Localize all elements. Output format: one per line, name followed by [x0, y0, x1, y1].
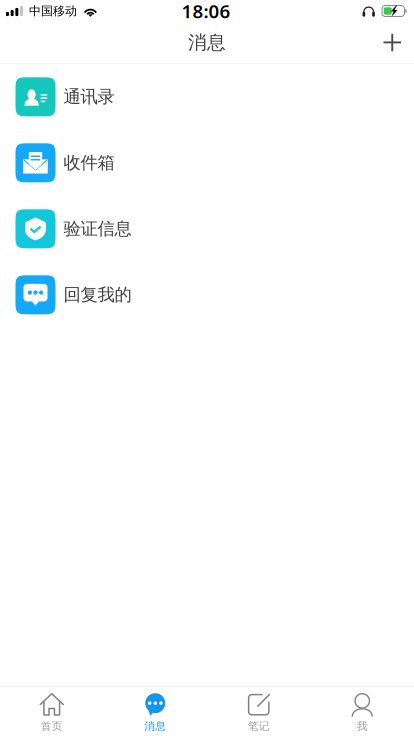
staticText: 中国移动	[29, 4, 77, 18]
button[interactable]: 验证信息	[0, 196, 414, 262]
staticText: 通讯录	[63, 86, 114, 107]
button[interactable]: 首页	[0, 685, 103, 736]
button[interactable]: 消息	[103, 685, 207, 736]
staticText: 我	[357, 720, 368, 733]
staticText: 消息	[188, 31, 226, 54]
button[interactable]: 通讯录	[0, 64, 414, 130]
button[interactable]: 笔记	[207, 685, 310, 736]
button[interactable]: 收件箱	[0, 130, 414, 196]
staticText: 笔记	[248, 720, 270, 733]
staticText: 收件箱	[63, 152, 114, 173]
staticText: 首页	[41, 720, 63, 733]
button[interactable]: 回复我的	[0, 262, 414, 328]
staticText: 18:06	[181, 0, 230, 23]
button[interactable]: 我	[310, 685, 414, 736]
staticText: 回复我的	[63, 284, 131, 305]
staticText: 消息	[144, 720, 166, 733]
staticText: 验证信息	[63, 218, 131, 239]
button[interactable]: 新建	[370, 23, 414, 62]
